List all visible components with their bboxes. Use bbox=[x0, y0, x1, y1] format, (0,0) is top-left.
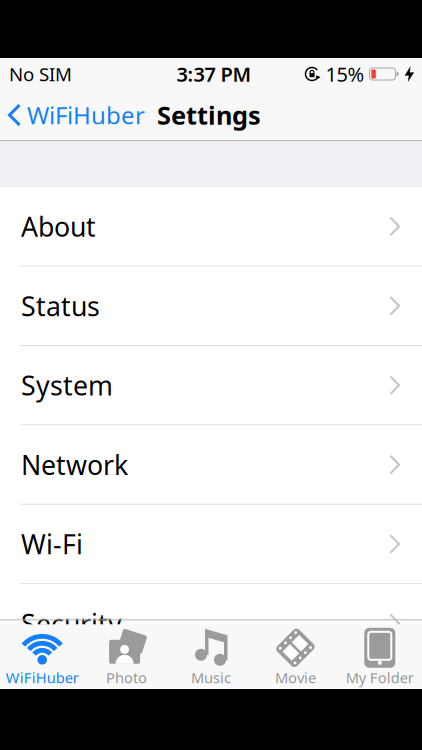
staticText: Music bbox=[191, 668, 231, 687]
staticText: Photo bbox=[106, 668, 147, 687]
button[interactable]: Music bbox=[169, 628, 253, 687]
staticText: System bbox=[21, 367, 113, 403]
button[interactable]: Network bbox=[0, 425, 422, 505]
button[interactable]: Security bbox=[0, 584, 422, 664]
staticText: WiFiHuber bbox=[6, 668, 79, 687]
button[interactable]: My Folder bbox=[338, 628, 422, 687]
button[interactable]: Movie bbox=[253, 628, 338, 687]
staticText: My Folder bbox=[346, 668, 414, 687]
button[interactable]: Wi-Fi bbox=[0, 505, 422, 584]
staticText: 15% bbox=[325, 61, 364, 87]
staticText: Status bbox=[21, 288, 100, 323]
staticText: Wi-Fi bbox=[21, 526, 83, 562]
button[interactable]: System bbox=[0, 346, 422, 425]
staticText: WiFiHuber bbox=[27, 99, 145, 131]
staticText: About bbox=[21, 209, 96, 244]
staticText: 3:37 PM bbox=[176, 61, 251, 87]
staticText: Network bbox=[21, 447, 128, 482]
button[interactable]: Back bbox=[0, 99, 145, 131]
staticText: No SIM bbox=[9, 62, 72, 86]
button[interactable]: Status bbox=[0, 267, 422, 346]
button[interactable]: About bbox=[0, 187, 422, 267]
staticText: Settings bbox=[157, 98, 261, 132]
staticText: Security bbox=[21, 606, 122, 641]
staticText: Movie bbox=[275, 668, 316, 687]
button[interactable]: Photo bbox=[84, 628, 169, 687]
button[interactable]: WiFiHuber bbox=[0, 628, 84, 687]
